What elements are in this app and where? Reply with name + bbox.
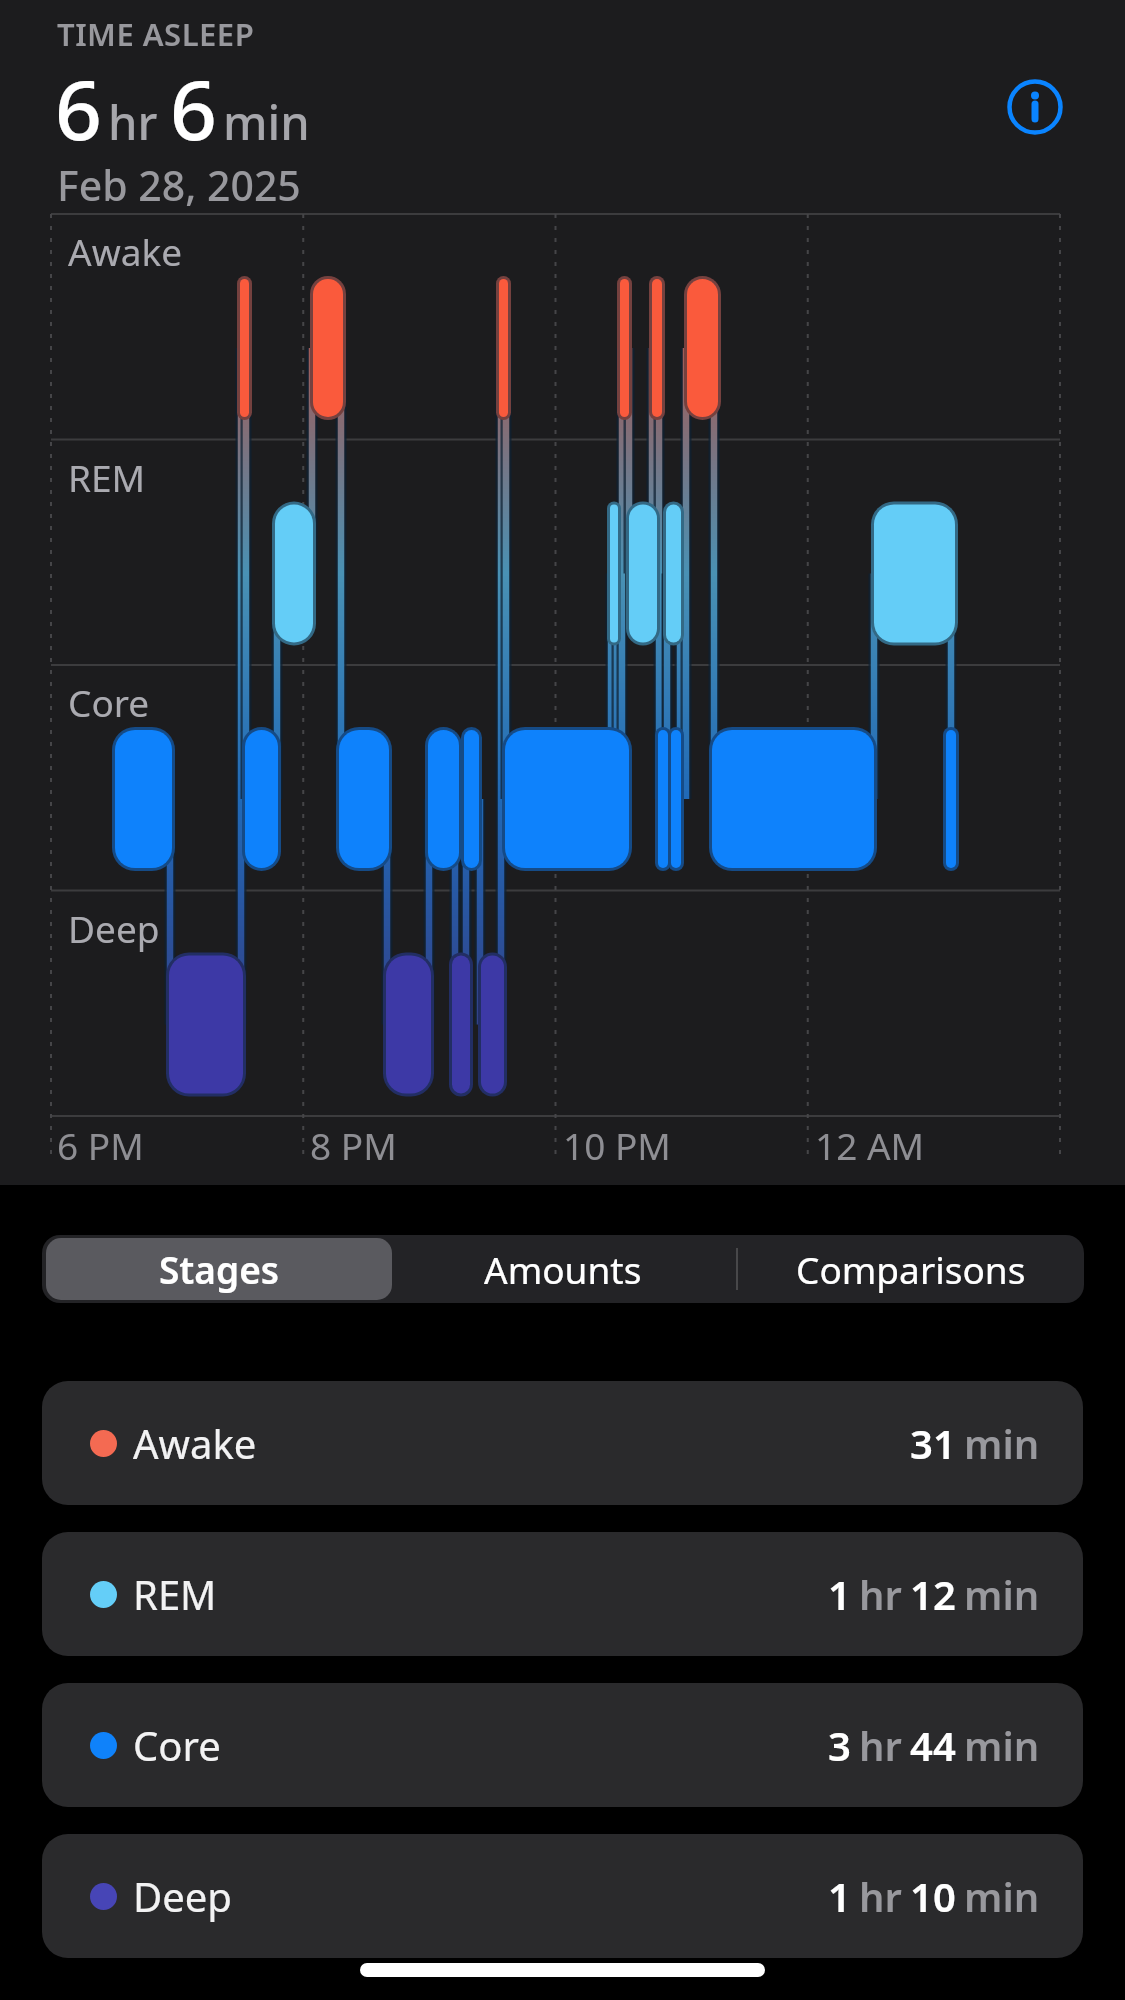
button[interactable] (1008, 80, 1062, 134)
staticText: Amounts (484, 1244, 642, 1294)
staticText: min (223, 90, 310, 154)
staticText: 1 (828, 1567, 851, 1621)
staticText: 12 AM (815, 1120, 925, 1170)
staticText: min (964, 1869, 1040, 1923)
staticText: hr (859, 1567, 902, 1621)
staticText: 10 (910, 1869, 956, 1923)
staticText: 31 (910, 1416, 956, 1470)
button[interactable]: Comparisons (737, 1235, 1084, 1303)
button[interactable]: Core (42, 1683, 1083, 1807)
button[interactable]: Amounts (389, 1235, 737, 1303)
staticText: 44 (910, 1718, 956, 1772)
button[interactable]: Stages (46, 1238, 392, 1300)
staticText: 6 PM (57, 1120, 144, 1170)
staticText: Awake (68, 226, 183, 276)
staticText: min (964, 1567, 1040, 1621)
staticText: min (964, 1416, 1040, 1470)
staticText: hr (108, 90, 158, 154)
staticText: Deep (68, 903, 160, 953)
staticText: hr (859, 1869, 902, 1923)
staticText: 3 (828, 1718, 851, 1772)
staticText: Comparisons (796, 1244, 1026, 1294)
staticText: Awake (133, 1416, 257, 1470)
staticText: 10 PM (563, 1120, 671, 1170)
staticText: Core (68, 677, 150, 727)
staticText: 8 PM (310, 1120, 397, 1170)
staticText: Stages (159, 1244, 280, 1294)
staticText: Deep (133, 1869, 232, 1923)
staticText: REM (133, 1567, 217, 1621)
staticText: 6 (55, 52, 102, 164)
staticText: 6 (170, 52, 217, 164)
button[interactable]: Awake (42, 1381, 1083, 1505)
staticText: hr (859, 1718, 902, 1772)
staticText: TIME ASLEEP (57, 13, 255, 55)
button[interactable]: REM (42, 1532, 1083, 1656)
staticText: 1 (828, 1869, 851, 1923)
button[interactable]: Deep (42, 1834, 1083, 1958)
staticText: Feb 28, 2025 (57, 157, 301, 213)
staticText: 12 (910, 1567, 956, 1621)
staticText: REM (68, 452, 146, 502)
staticText: min (964, 1718, 1040, 1772)
staticText: Core (133, 1718, 221, 1772)
